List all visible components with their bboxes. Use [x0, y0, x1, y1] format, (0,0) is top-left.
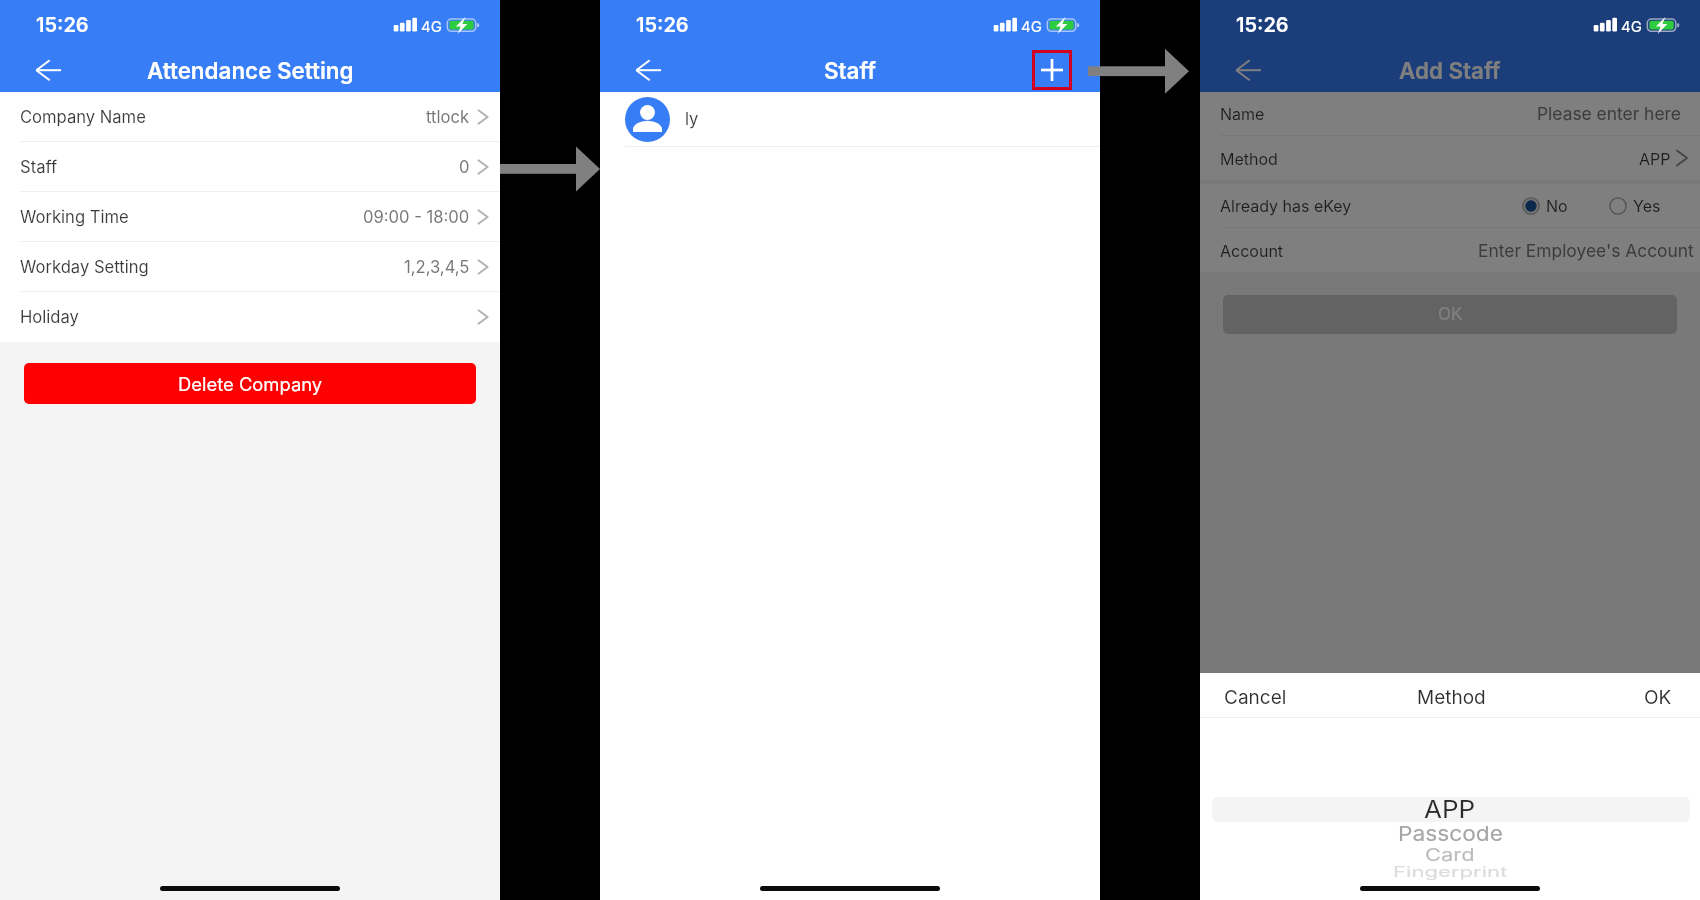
button[interactable]: Back: [28, 53, 70, 87]
staticText: Card: [1425, 845, 1475, 865]
staticText: APP: [1424, 795, 1476, 824]
staticText: Company Name: [20, 107, 146, 127]
staticText: Account: [1220, 241, 1284, 260]
staticText: 15:26: [636, 13, 689, 37]
button[interactable]: Name: [1200, 92, 1700, 135]
button[interactable]: Working Time: [0, 192, 500, 241]
staticText: Name: [1220, 104, 1265, 123]
button[interactable]: Back: [1228, 53, 1270, 87]
staticText: OK: [1438, 304, 1463, 325]
staticText: Staff: [824, 57, 876, 84]
button[interactable]: Cancel: [1200, 686, 1287, 709]
button[interactable]: OK: [1644, 686, 1700, 709]
staticText: Please enter here: [1537, 103, 1681, 124]
button[interactable]: No: [1521, 196, 1569, 215]
staticText: 15:26: [1236, 13, 1289, 37]
staticText: 1,2,3,4,5: [404, 257, 470, 277]
staticText: ly: [685, 109, 699, 129]
staticText: APP: [1639, 149, 1671, 168]
button[interactable]: Workday Setting: [0, 242, 500, 291]
staticText: 4G: [1621, 17, 1642, 35]
staticText: Method: [1417, 686, 1486, 709]
staticText: Holiday: [20, 307, 79, 327]
staticText: Working Time: [20, 207, 129, 227]
staticText: No: [1546, 196, 1568, 215]
button[interactable]: Method: [1200, 136, 1700, 180]
staticText: Yes: [1633, 196, 1661, 215]
button[interactable]: ly: [600, 92, 1100, 146]
staticText: Passcode: [1398, 821, 1503, 846]
staticText: Enter Employee's Account: [1478, 240, 1694, 261]
staticText: Add Staff: [1399, 57, 1501, 84]
button[interactable]: Holiday: [0, 292, 500, 342]
button[interactable]: Company Name: [0, 92, 500, 141]
staticText: Attendance Setting: [147, 57, 354, 84]
staticText: 4G: [421, 17, 442, 35]
staticText: Fingerprint: [1393, 864, 1508, 881]
staticText: Delete Company: [178, 373, 323, 395]
button[interactable]: Staff: [0, 142, 500, 191]
staticText: 15:26: [36, 13, 89, 37]
button[interactable]: Account: [1200, 228, 1700, 272]
button[interactable]: Delete Company: [24, 363, 476, 404]
staticText: Already has eKey: [1220, 196, 1352, 215]
staticText: 0: [459, 157, 470, 177]
staticText: 4G: [1021, 17, 1042, 35]
staticText: Method: [1220, 149, 1278, 168]
staticText: 09:00 - 18:00: [363, 207, 470, 227]
button[interactable]: Yes: [1608, 196, 1662, 215]
button[interactable]: Back: [628, 53, 670, 87]
button[interactable]: Add staff: [1032, 50, 1072, 90]
staticText: Staff: [20, 157, 58, 177]
staticText: ttlock: [426, 107, 470, 127]
staticText: Workday Setting: [20, 257, 149, 277]
